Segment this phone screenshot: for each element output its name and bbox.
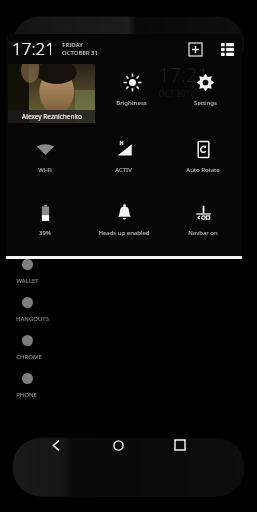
button[interactable]: PHONE bbox=[6, 373, 242, 411]
staticText: Alexey Reznichenko bbox=[22, 112, 82, 121]
button[interactable]: 39% bbox=[6, 193, 84, 237]
button[interactable]: Home bbox=[103, 430, 133, 460]
button[interactable]: Edit tiles bbox=[218, 40, 236, 58]
staticText: WALLET bbox=[16, 277, 39, 285]
staticText: 17:21 bbox=[12, 37, 55, 60]
button[interactable]: Recent apps bbox=[165, 430, 195, 460]
staticText: FRIDAY bbox=[62, 41, 83, 49]
button[interactable]: Heads up enabled bbox=[84, 193, 163, 237]
button[interactable]: WALLET bbox=[6, 259, 242, 297]
staticText: HANGOUTS bbox=[16, 315, 49, 323]
staticText: Navbar on bbox=[188, 229, 218, 237]
button[interactable]: Settings bbox=[168, 63, 242, 107]
staticText: OCTOBER 31 bbox=[62, 49, 98, 57]
button[interactable]: Back bbox=[41, 430, 71, 460]
button[interactable]: Auto Rotate bbox=[163, 130, 242, 174]
staticText: Heads up enabled bbox=[98, 229, 150, 237]
button[interactable]: ACTIV bbox=[84, 130, 163, 174]
staticText: Wi-Fi bbox=[38, 166, 52, 174]
staticText: 17:21 bbox=[158, 61, 209, 88]
staticText: CHROME bbox=[16, 353, 42, 361]
button[interactable]: Navbar on bbox=[163, 193, 242, 237]
staticText: ACTIV bbox=[115, 166, 132, 174]
staticText: Brightness bbox=[116, 99, 147, 107]
button[interactable]: Alexey Reznichenko bbox=[8, 64, 95, 123]
button[interactable]: Brightness bbox=[95, 63, 168, 107]
staticText: Settings bbox=[194, 99, 217, 107]
button[interactable]: HANGOUTS bbox=[6, 297, 242, 335]
button[interactable]: Wi-Fi bbox=[6, 130, 84, 174]
button[interactable]: CHROME bbox=[6, 335, 242, 373]
button[interactable]: Add tile bbox=[186, 40, 204, 58]
staticText: 39% bbox=[39, 229, 51, 237]
staticText: Auto Rotate bbox=[186, 166, 220, 174]
staticText: PHONE bbox=[16, 391, 37, 399]
staticText: OCT 2014 bbox=[158, 88, 195, 99]
